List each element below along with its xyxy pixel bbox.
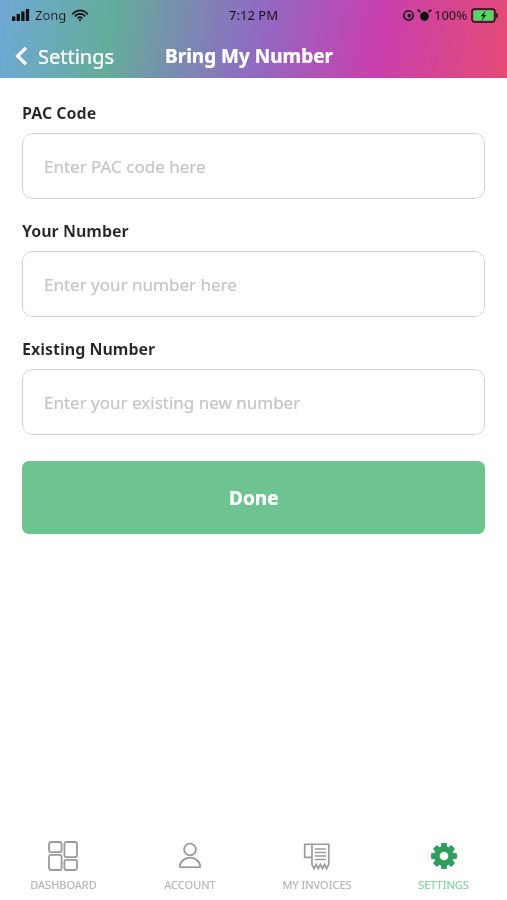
staticText: Your Number (22, 220, 129, 242)
staticText: PAC Code (22, 102, 97, 124)
staticText: Settings (38, 43, 115, 70)
staticText: Done (229, 485, 279, 511)
button[interactable]: Enter your number here (22, 251, 485, 317)
staticText: 7:12 PM (229, 6, 279, 24)
staticText: Existing Number (22, 338, 156, 360)
staticText: ACCOUNT (164, 877, 216, 892)
button[interactable]: Done (22, 461, 485, 534)
button[interactable]: Enter your existing new number (22, 369, 485, 435)
button[interactable]: ACCOUNT (126, 828, 253, 900)
staticText: Enter PAC code here (44, 155, 206, 178)
staticText: Enter your number here (44, 273, 237, 296)
button[interactable]: SETTINGS (380, 828, 507, 900)
button[interactable]: DASHBOARD (0, 828, 126, 900)
staticText: DASHBOARD (30, 877, 97, 892)
button[interactable]: Enter PAC code here (22, 133, 485, 199)
staticText: MY INVOICES (282, 877, 352, 892)
staticText: Zong (35, 6, 67, 24)
staticText: Bring My Number (165, 43, 333, 69)
button[interactable]: Settings (0, 34, 123, 78)
button[interactable]: MY INVOICES (253, 828, 380, 900)
staticText: Enter your existing new number (44, 391, 301, 414)
staticText: SETTINGS (418, 877, 469, 892)
staticText: 100% (434, 6, 468, 24)
